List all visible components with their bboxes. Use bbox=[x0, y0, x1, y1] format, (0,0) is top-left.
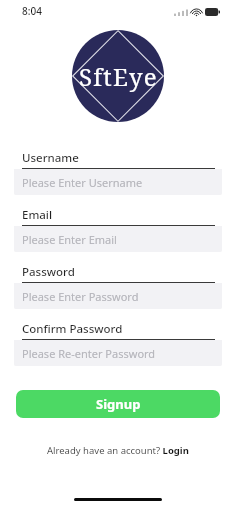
button[interactable]: Confirm Password bbox=[14, 318, 222, 366]
staticText: Please Enter Username bbox=[22, 175, 143, 190]
staticText: Email bbox=[22, 207, 53, 223]
button[interactable]: Email bbox=[14, 204, 222, 252]
staticText: Already have an account? Login bbox=[47, 444, 189, 457]
staticText: Password bbox=[22, 264, 75, 280]
staticText: Please Enter Email bbox=[22, 232, 117, 247]
staticText: Confirm Password bbox=[22, 321, 123, 337]
button[interactable]: Signup bbox=[16, 390, 220, 418]
staticText: Please Re-enter Password bbox=[22, 346, 156, 361]
staticText: 8:04 bbox=[22, 4, 42, 18]
staticText: Username bbox=[22, 150, 79, 166]
button[interactable]: Already have an account? Login bbox=[43, 440, 193, 461]
staticText: SftEye bbox=[79, 60, 158, 93]
button[interactable]: Username bbox=[14, 147, 222, 195]
staticText: Signup bbox=[96, 395, 141, 413]
staticText: Please Enter Password bbox=[22, 289, 139, 304]
button[interactable]: Password bbox=[14, 261, 222, 309]
